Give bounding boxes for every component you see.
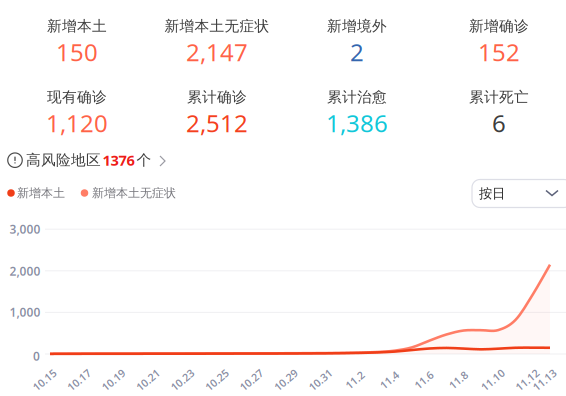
staticText: 3,000 xyxy=(9,221,40,237)
staticText: 1,000 xyxy=(9,304,40,320)
staticText: 新增本土无症状 xyxy=(164,17,269,35)
button[interactable]: 高风险地区 xyxy=(0,0,566,396)
staticText: 10.27 xyxy=(238,373,265,387)
staticText: 新增本土 xyxy=(17,186,65,200)
staticText: 按日 xyxy=(479,185,505,202)
staticText: 10.29 xyxy=(272,373,299,387)
staticText: 11.13 xyxy=(531,373,558,387)
staticText: 2,512 xyxy=(186,107,248,139)
staticText: 11.6 xyxy=(413,373,434,387)
staticText: 0 xyxy=(33,348,40,364)
staticText: 个 xyxy=(136,151,151,169)
staticText: 新增本土 xyxy=(47,17,107,35)
staticText: 1376 xyxy=(102,150,134,170)
staticText: 11.8 xyxy=(448,373,469,387)
staticText: 累计确诊 xyxy=(187,88,247,106)
staticText: 累计死亡 xyxy=(469,88,529,106)
staticText: 10.19 xyxy=(100,373,127,387)
staticText: 150 xyxy=(56,36,98,68)
staticText: 1,386 xyxy=(326,107,388,139)
staticText: 2 xyxy=(350,36,364,68)
staticText: 10.17 xyxy=(65,373,92,387)
staticText: 新增本土无症状 xyxy=(92,186,176,200)
staticText: 新增确诊 xyxy=(469,17,529,35)
staticText: 新增境外 xyxy=(327,17,387,35)
staticText: 11.10 xyxy=(479,373,506,387)
staticText: 累计治愈 xyxy=(327,88,387,106)
staticText: 10.23 xyxy=(169,373,196,387)
button[interactable]: 按日 xyxy=(0,0,566,396)
staticText: 高风险地区 xyxy=(26,151,101,169)
staticText: 11.12 xyxy=(514,373,541,387)
staticText: 1,120 xyxy=(46,107,108,139)
staticText: 2,147 xyxy=(186,36,248,68)
staticText: 6 xyxy=(492,107,506,139)
staticText: 11.4 xyxy=(379,373,400,387)
staticText: 2,000 xyxy=(9,263,40,279)
staticText: 10.15 xyxy=(31,373,58,387)
staticText: 10.25 xyxy=(203,373,230,387)
staticText: 10.31 xyxy=(307,373,334,387)
staticText: 152 xyxy=(478,36,520,68)
staticText: 11.2 xyxy=(344,373,365,387)
staticText: 10.21 xyxy=(134,373,161,387)
staticText: 现有确诊 xyxy=(47,88,107,106)
